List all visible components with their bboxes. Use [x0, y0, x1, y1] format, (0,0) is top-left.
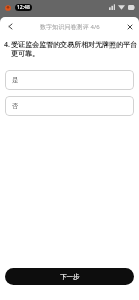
staticText: 否	[12, 102, 19, 110]
button[interactable]: Close	[123, 20, 136, 33]
button[interactable]: 是	[5, 70, 134, 90]
button[interactable]: 下一步	[5, 268, 134, 285]
staticText: 下一步	[60, 273, 80, 281]
staticText: 4.	[4, 40, 10, 50]
staticText: 数字知识问卷测评 4/6	[40, 23, 100, 31]
staticText: 受证监会监管的交易所相对无牌照的平台更可靠。	[11, 40, 138, 58]
staticText: 是	[12, 76, 19, 84]
button[interactable]: Back	[3, 20, 16, 33]
button[interactable]: 否	[5, 96, 134, 116]
staticText: 12:48	[17, 4, 30, 11]
